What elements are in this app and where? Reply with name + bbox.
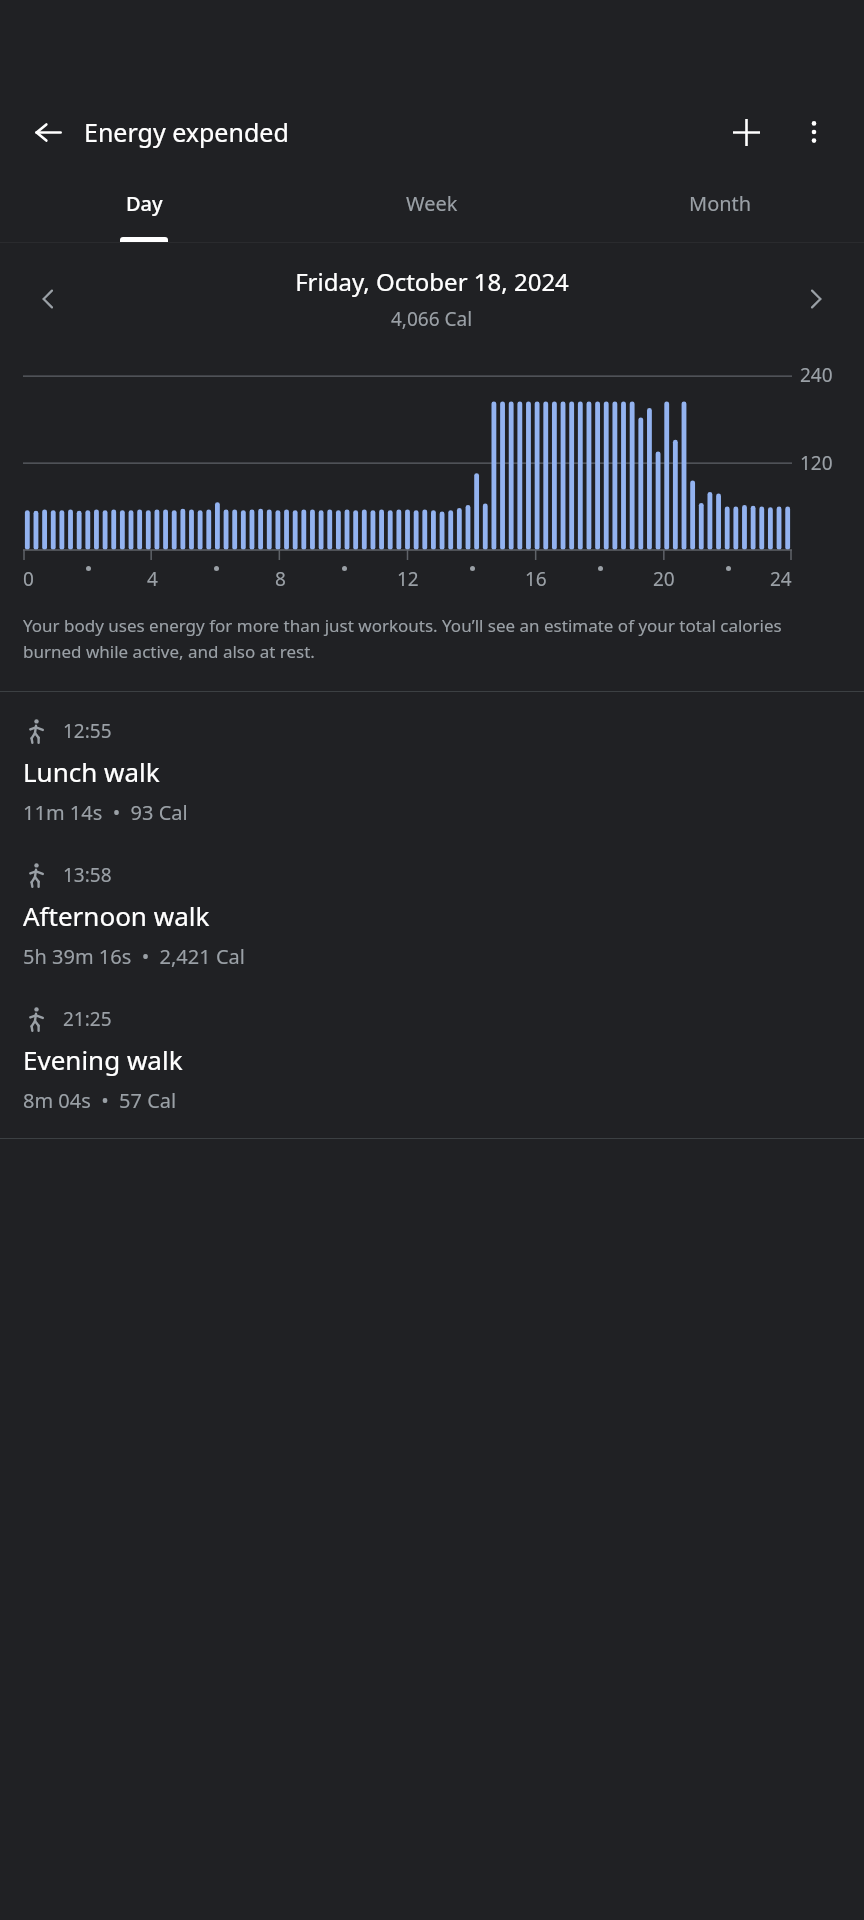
staticText: Energy expended — [84, 115, 289, 149]
staticText: 240 — [800, 362, 833, 388]
staticText: 4 — [147, 566, 158, 592]
staticText: Day — [126, 190, 163, 217]
staticText: 120 — [800, 450, 833, 476]
staticText: 13:58 — [63, 862, 112, 888]
staticText: 21:25 — [63, 1006, 112, 1032]
staticText: Afternoon walk — [23, 898, 210, 933]
button[interactable]: Next day — [790, 273, 842, 325]
staticText: 0 — [23, 566, 34, 592]
staticText: Lunch walk — [23, 754, 160, 789]
button[interactable]: Month — [576, 186, 864, 242]
staticText: Friday, October 18, 2024 — [295, 265, 569, 298]
button[interactable]: Week — [288, 186, 576, 242]
staticText: 12:55 — [63, 718, 112, 744]
button[interactable]: Day — [0, 186, 288, 242]
staticText: 8m 04s • 57 Cal — [23, 1087, 177, 1114]
button[interactable]: Previous day — [22, 273, 74, 325]
button[interactable]: 12:55 — [0, 692, 864, 836]
staticText: 12 — [397, 566, 419, 592]
staticText: 5h 39m 16s • 2,421 Cal — [23, 943, 245, 970]
button[interactable]: 13:58 — [0, 836, 864, 980]
button[interactable]: 21:25 — [0, 980, 864, 1124]
staticText: 24 — [770, 566, 792, 592]
staticText: Month — [689, 190, 752, 217]
staticText: 20 — [653, 566, 675, 592]
staticText: Your body uses energy for more than just… — [23, 614, 841, 663]
staticText: Evening walk — [23, 1042, 183, 1077]
staticText: 11m 14s • 93 Cal — [23, 799, 188, 826]
button[interactable]: More options — [786, 104, 842, 160]
button[interactable]: Back — [22, 106, 74, 158]
button[interactable]: Add — [718, 104, 774, 160]
staticText: Week — [406, 190, 458, 217]
staticText: 4,066 Cal — [391, 306, 473, 332]
staticText: 16 — [525, 566, 547, 592]
staticText: 8 — [275, 566, 286, 592]
